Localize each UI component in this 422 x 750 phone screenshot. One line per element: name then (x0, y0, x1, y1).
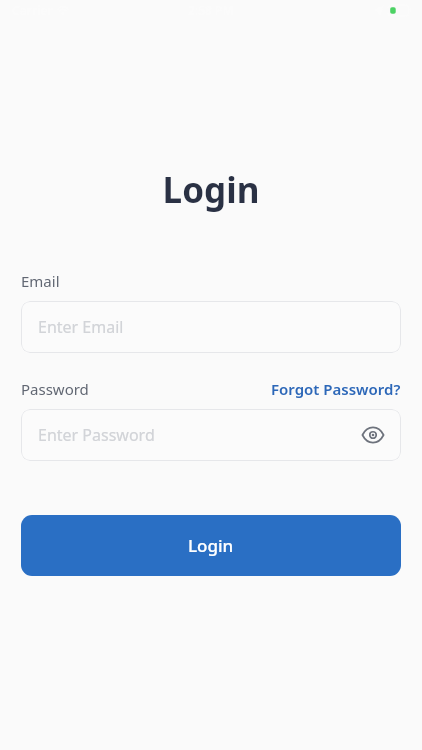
button[interactable]: Show password (355, 417, 391, 453)
staticText: Password (21, 379, 89, 399)
staticText: Forgot Password? (271, 379, 401, 399)
button[interactable]: Login (21, 515, 401, 576)
staticText: Login (188, 534, 234, 557)
staticText: Enter Password (38, 424, 155, 446)
button[interactable]: Enter Email (21, 301, 401, 353)
staticText: Enter Email (38, 316, 124, 338)
staticText: Login (21, 166, 401, 214)
button[interactable]: Forgot Password? (271, 379, 401, 399)
staticText: Email (21, 271, 60, 291)
button[interactable]: Enter Password (21, 409, 401, 461)
